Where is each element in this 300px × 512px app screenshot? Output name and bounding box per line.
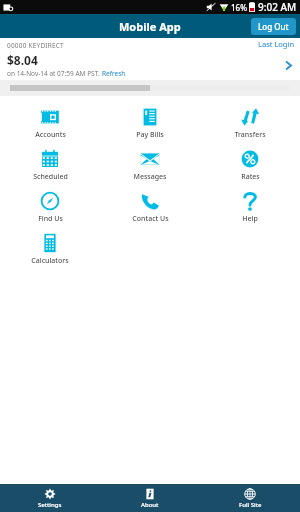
staticText: 00000 KEYDIRECT — [7, 41, 64, 50]
button[interactable]: Help — [200, 186, 300, 228]
staticText: Messages — [133, 172, 167, 182]
staticText: Accounts — [35, 130, 66, 140]
staticText: Transfers — [234, 130, 266, 140]
button[interactable]: Log Out — [251, 18, 296, 35]
button[interactable]: Messages — [100, 144, 200, 186]
button[interactable]: Rates — [200, 144, 300, 186]
staticText: Contact Us — [132, 214, 169, 224]
button[interactable]: Pay Bills — [100, 102, 200, 144]
staticText: Help — [242, 214, 258, 224]
staticText: Settings — [38, 501, 62, 509]
button[interactable]: Refresh — [102, 69, 126, 78]
button[interactable]: Contact Us — [100, 186, 200, 228]
button[interactable]: Full Site — [200, 484, 300, 512]
button[interactable]: Scheduled — [0, 144, 100, 186]
button[interactable]: Find Us — [0, 186, 100, 228]
button[interactable]: Accounts — [0, 102, 100, 144]
staticText: Full Site — [239, 501, 262, 509]
staticText: Mobile App — [119, 19, 181, 34]
staticText: $8.04 — [7, 52, 38, 68]
staticText: About — [141, 501, 159, 509]
staticText: Scheduled — [33, 172, 68, 182]
staticText: Calculators — [31, 256, 69, 266]
staticText: Find Us — [38, 214, 63, 224]
button[interactable]: Open account — [280, 57, 296, 73]
staticText: Rates — [241, 172, 260, 182]
staticText: 16% — [231, 2, 247, 13]
staticText: Pay Bills — [136, 130, 164, 140]
button[interactable]: Transfers — [200, 102, 300, 144]
button[interactable]: Calculators — [0, 228, 100, 270]
staticText: Log Out — [258, 21, 289, 32]
staticText: 9:02 AM — [258, 0, 297, 14]
button[interactable]: Last Login — [0, 38, 300, 80]
button[interactable]: Settings — [0, 484, 100, 512]
button[interactable]: About — [100, 484, 200, 512]
staticText: Last Login — [258, 39, 295, 49]
staticText: on 14-Nov-14 at 07:59 AM PST. — [7, 69, 102, 78]
